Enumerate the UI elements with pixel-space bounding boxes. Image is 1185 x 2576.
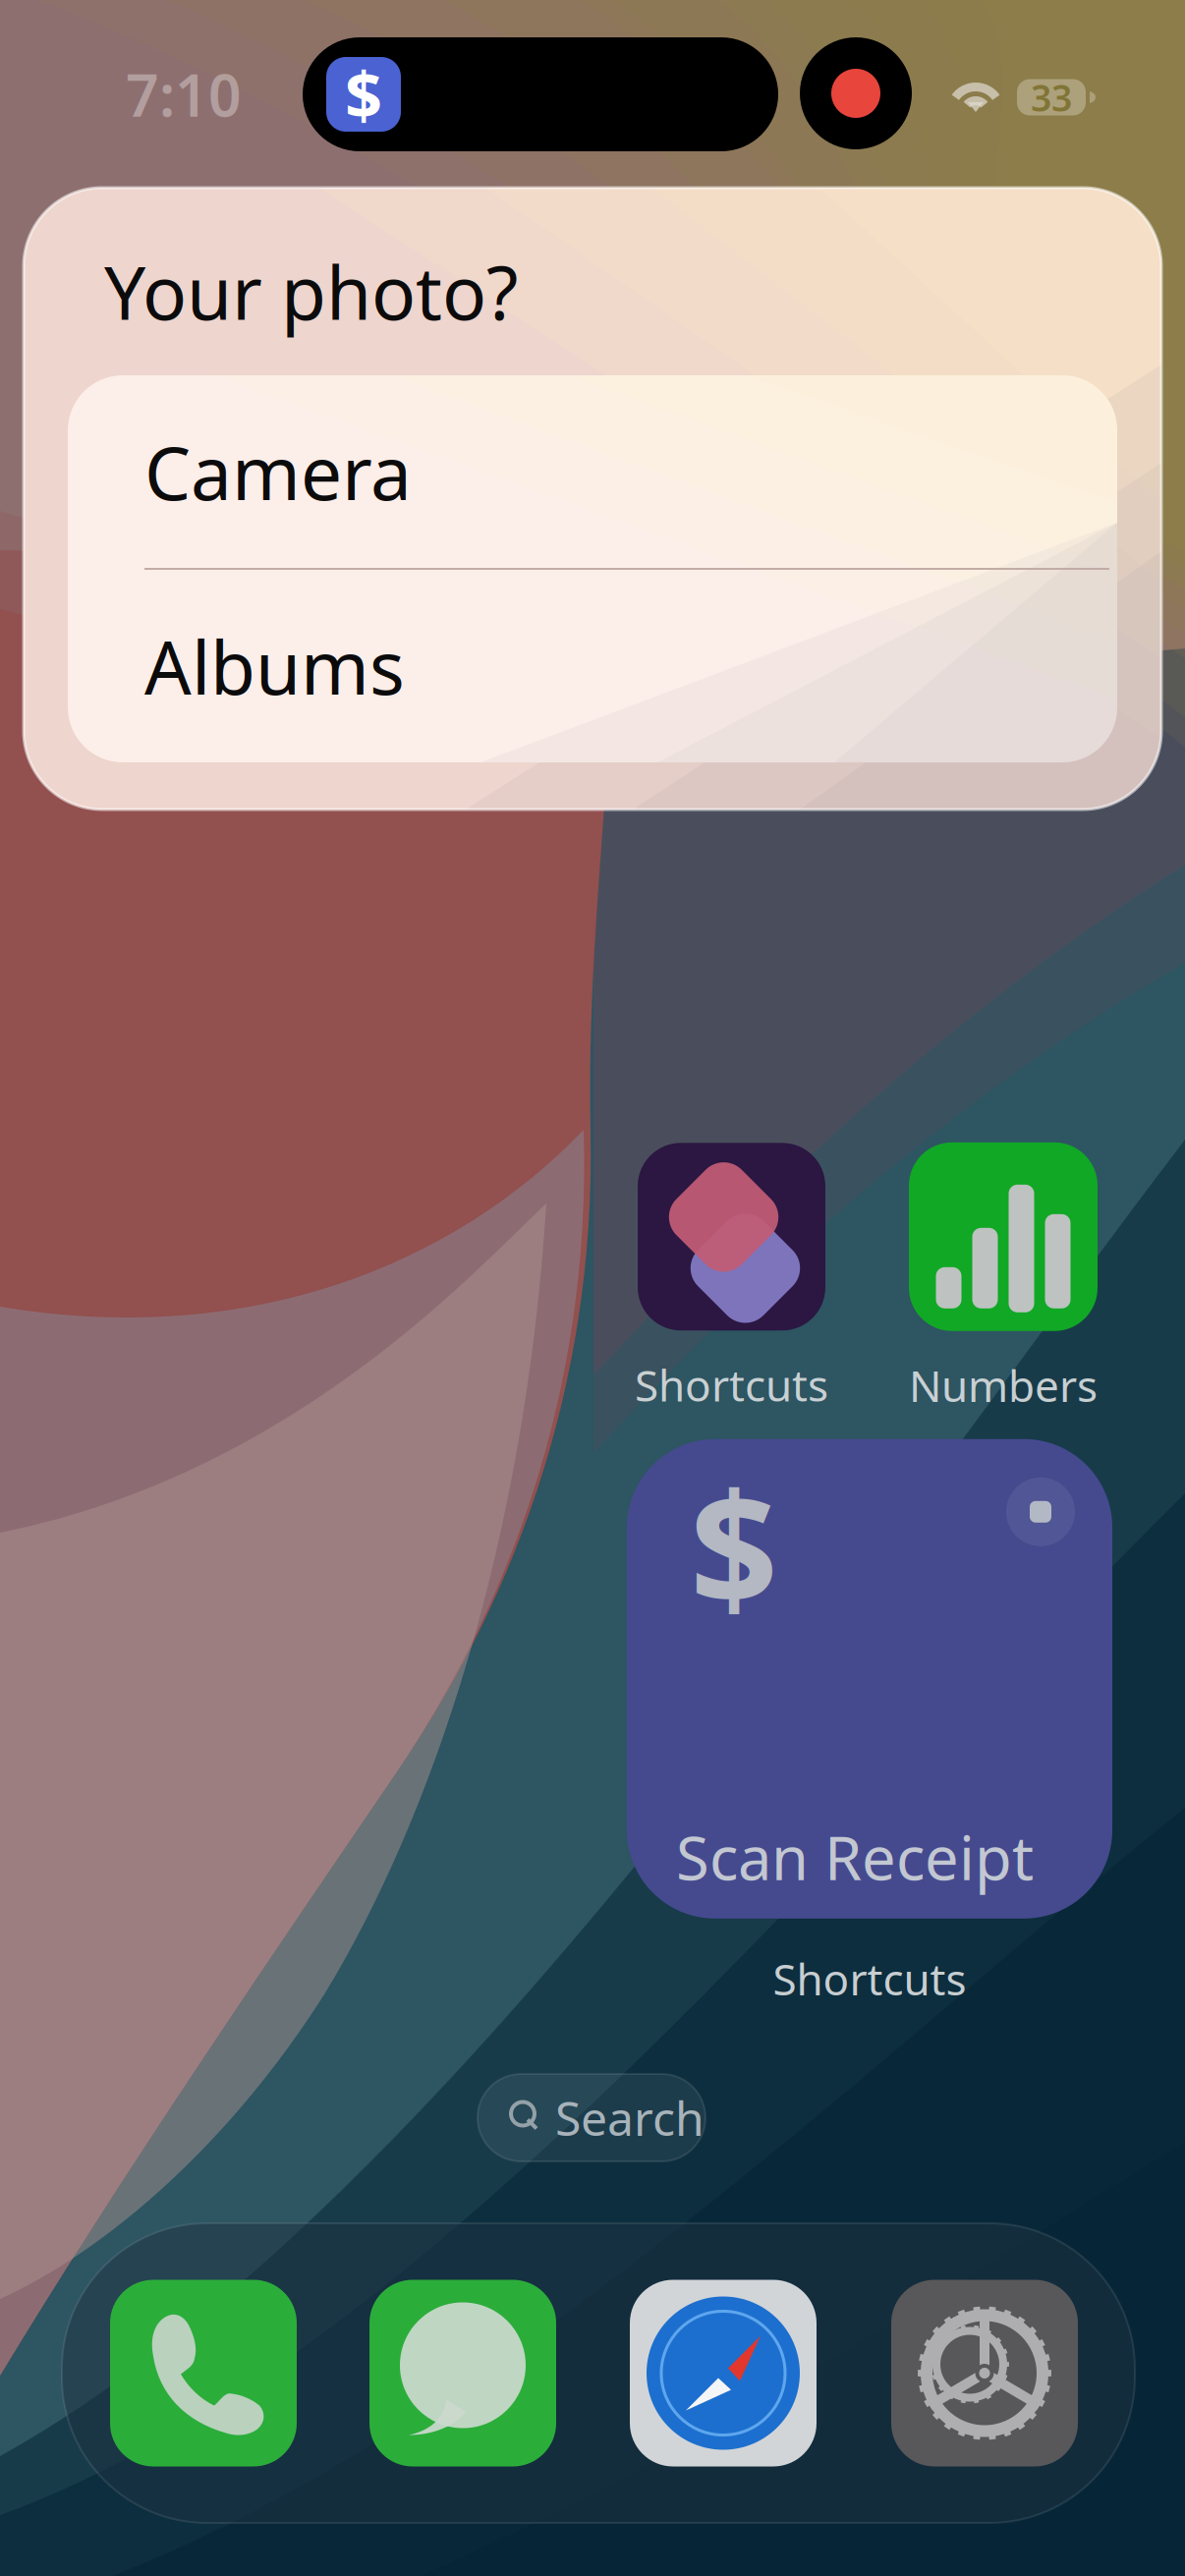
staticText: 7:10 [126,56,242,133]
staticText: Camera [144,423,412,520]
staticText: Search [555,2086,705,2149]
staticText: 33 [1031,73,1072,122]
button[interactable]: Shortcuts [638,1152,825,1404]
staticText: Albums [144,617,405,715]
staticText: $ [345,51,382,138]
button[interactable]: Albums [68,570,1117,762]
staticText: Shortcuts [773,1950,966,2007]
staticText: Your photo? [104,243,518,340]
button[interactable]: Search [478,2074,705,2161]
staticText: Shortcuts [635,1356,828,1413]
staticText: Scan Receipt [676,1817,1034,1897]
button[interactable]: Messages [369,2280,556,2466]
button[interactable]: $ [627,1447,1112,1999]
button[interactable]: Safari [630,2280,817,2466]
staticText: $ [690,1443,778,1648]
button[interactable]: Camera [68,375,1117,568]
button[interactable]: Phone [110,2280,297,2466]
button[interactable]: Settings [891,2280,1078,2466]
button[interactable]: Numbers [909,1152,1098,1404]
staticText: Numbers [909,1357,1098,1414]
